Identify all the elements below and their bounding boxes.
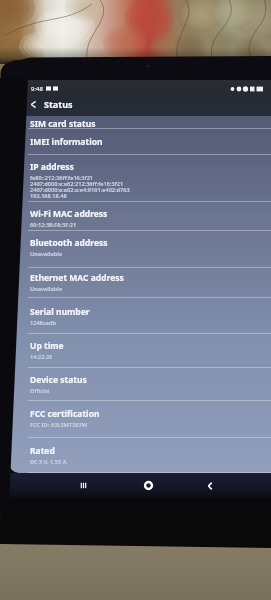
staticText: Ethernet MAC address [30, 272, 124, 284]
staticText: Rated [30, 445, 55, 457]
button[interactable]: Ethernet MAC address [9, 268, 271, 298]
button[interactable]: Bluetooth address [9, 231, 271, 268]
button[interactable]: Up time [9, 334, 271, 368]
staticText: FCC ID: A3LSMT387W [30, 421, 88, 429]
button[interactable]: Back [188, 473, 232, 498]
staticText: Up time [30, 340, 64, 352]
button[interactable]: IP address [9, 155, 271, 202]
staticText: FCC certification [30, 408, 100, 420]
button[interactable]: FCC certification [9, 401, 271, 438]
staticText: Wi-Fi MAC address [30, 208, 108, 220]
button[interactable]: Navigate up [27, 98, 39, 110]
button[interactable]: Serial number [9, 298, 271, 334]
button[interactable]: Recent apps [61, 473, 105, 498]
staticText: Status [44, 98, 73, 110]
staticText: DC 5 V, 1.55 A [30, 458, 67, 466]
button[interactable]: Wi-Fi MAC address [9, 202, 271, 231]
staticText: Bluetooth address [30, 237, 108, 249]
staticText: fe80::212:36ff:fe16:3f21 2407:d000:e:e62… [30, 174, 130, 200]
staticText: Device status [30, 374, 87, 386]
staticText: 1248cadb [30, 319, 56, 327]
staticText: IP address [30, 161, 74, 173]
staticText: Serial number [30, 306, 90, 318]
button[interactable]: Rated [9, 438, 271, 473]
staticText: Official [30, 387, 50, 395]
staticText: 60:12:3B:F6:3F:21 [30, 221, 77, 229]
button[interactable]: Device status [9, 368, 271, 401]
button[interactable]: SIM card status [9, 116, 271, 129]
button[interactable]: IMEI information [9, 129, 271, 155]
staticText: IMEI information [30, 136, 103, 148]
staticText: Unavailable [30, 250, 63, 258]
staticText: SIM card status [30, 118, 96, 129]
staticText: 14:22:29 [30, 353, 53, 361]
staticText: 9:48 [31, 85, 43, 93]
staticText: Unavailable [30, 285, 63, 293]
button[interactable]: Home [126, 473, 170, 498]
